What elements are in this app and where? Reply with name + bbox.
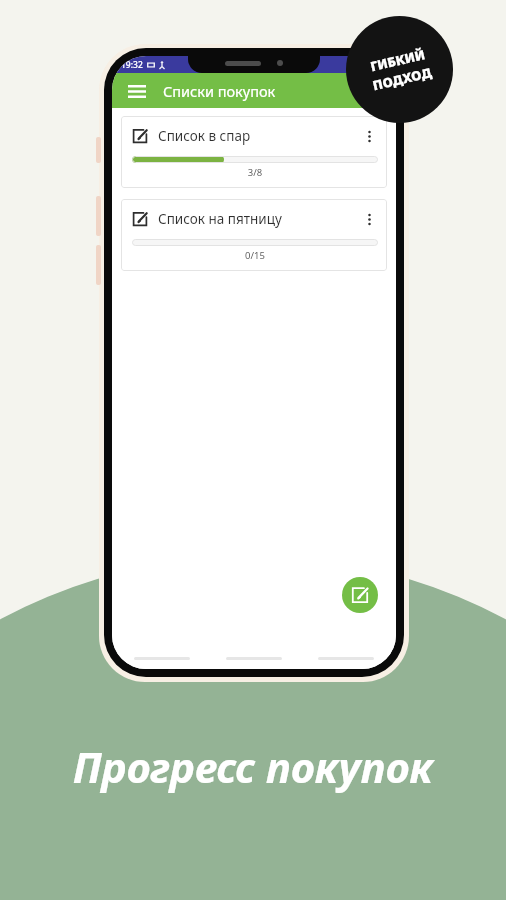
staticText: Список в спар bbox=[158, 127, 360, 145]
staticText: Списки покупок bbox=[163, 81, 276, 101]
button[interactable]: Гибкий подход bbox=[346, 16, 453, 123]
button[interactable]: Список в спар bbox=[121, 116, 387, 188]
button[interactable]: Список на пятницу bbox=[121, 199, 387, 271]
staticText: 0/15 bbox=[132, 249, 378, 262]
staticText: 3/8 bbox=[132, 166, 378, 179]
staticText: ГИБКИЙ bbox=[369, 45, 427, 75]
staticText: 19:32 bbox=[121, 59, 143, 71]
staticText: ПОДХОД bbox=[371, 63, 433, 94]
button[interactable]: More options bbox=[360, 125, 378, 147]
staticText: Прогресс покупок bbox=[14, 738, 492, 795]
button[interactable]: Open navigation menu bbox=[124, 78, 150, 104]
button[interactable]: More options bbox=[360, 208, 378, 230]
staticText: Список на пятницу bbox=[158, 210, 360, 228]
button[interactable]: Create new shopping list bbox=[342, 577, 378, 613]
